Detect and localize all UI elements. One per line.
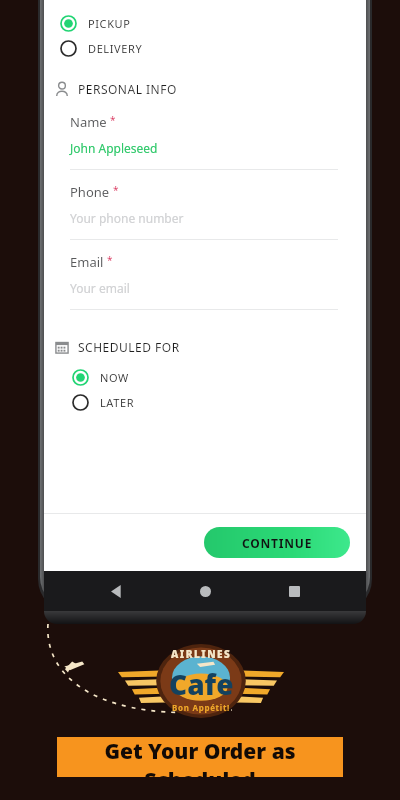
staticText: Get Your Order as Scheduled (57, 737, 343, 777)
button[interactable]: NOW (44, 365, 366, 390)
button[interactable]: Name (70, 113, 338, 183)
staticText: * (107, 253, 113, 267)
button[interactable]: PICKUP (44, 11, 366, 36)
staticText: Bon Appétit! (172, 702, 231, 713)
staticText: Your phone number (70, 210, 184, 226)
button[interactable]: Email (70, 253, 338, 323)
staticText: PICKUP (88, 16, 131, 31)
staticText: PERSONAL INFO (78, 81, 177, 97)
button[interactable]: Home (188, 574, 222, 608)
staticText: Phone (70, 183, 110, 201)
staticText: John Appleseed (70, 140, 158, 156)
staticText: Your email (70, 280, 130, 296)
staticText: SCHEDULED FOR (78, 339, 180, 355)
staticText: * (113, 183, 119, 197)
button[interactable]: DELIVERY (44, 36, 366, 61)
staticText: Name (70, 113, 107, 131)
staticText: * (110, 113, 116, 127)
button[interactable]: Recent apps (277, 574, 311, 608)
staticText: LATER (100, 395, 135, 410)
button[interactable]: Phone (70, 183, 338, 253)
staticText: Cafe (169, 665, 234, 703)
staticText: DELIVERY (88, 41, 143, 56)
button[interactable]: CONTINUE (204, 527, 350, 558)
staticText: CONTINUE (242, 535, 313, 551)
button[interactable]: LATER (44, 390, 366, 415)
staticText: NOW (100, 370, 129, 385)
button[interactable]: Back (99, 574, 133, 608)
staticText: Email (70, 253, 104, 271)
staticText: AIRLINES (171, 647, 232, 661)
